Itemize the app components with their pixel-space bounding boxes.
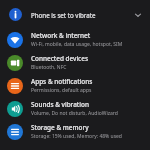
button[interactable]: Sounds & vibration (0, 97, 150, 120)
staticText: Network & internet (31, 31, 91, 40)
button[interactable]: Phone is set to vibrate (0, 5, 150, 24)
staticText: Permissions, default apps (31, 87, 92, 94)
staticText: Storage & memory (31, 123, 89, 132)
staticText: Wi-Fi, mobile, data usage, hotspot, SIM (31, 41, 123, 48)
staticText: Bluetooth, NFC (31, 64, 67, 71)
staticText: Sounds & vibration (31, 100, 89, 109)
staticText: Phone is set to vibrate (31, 11, 130, 19)
staticText: Apps & notifications (31, 77, 93, 86)
button[interactable]: Network & internet (0, 28, 150, 51)
button[interactable]: Apps & notifications (0, 74, 150, 97)
staticText: Connected devices (31, 54, 89, 63)
staticText: Volume, Do not disturb, AudioWizard (31, 110, 118, 117)
button[interactable]: Storage & memory (0, 120, 150, 143)
staticText: Storage: 15% used, Memory: 48% used (31, 133, 122, 140)
button[interactable]: Expand (130, 7, 146, 23)
button[interactable]: Connected devices (0, 51, 150, 74)
